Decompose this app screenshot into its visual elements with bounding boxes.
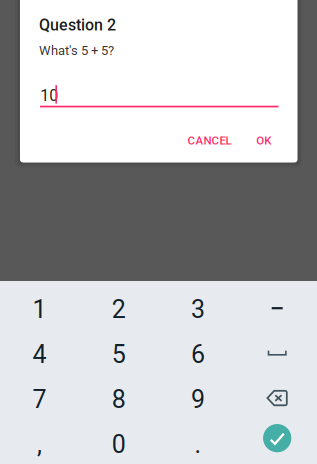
staticText: 3 <box>191 295 205 324</box>
button[interactable]: 2 <box>79 287 158 332</box>
button[interactable]: Done <box>238 416 317 461</box>
button[interactable]: , <box>0 422 79 464</box>
staticText: 5 <box>112 340 126 369</box>
staticText: 8 <box>112 385 126 414</box>
staticText: CANCEL <box>187 134 231 147</box>
button[interactable]: 8 <box>79 377 158 422</box>
button[interactable]: Minus <box>238 286 317 331</box>
button[interactable]: 5 <box>79 332 158 377</box>
staticText: What's 5 + 5? <box>39 43 114 58</box>
staticText: Question 2 <box>39 16 116 34</box>
staticText: 2 <box>112 295 126 324</box>
button[interactable]: 1 <box>0 287 79 332</box>
button[interactable]: Backspace <box>238 376 317 421</box>
staticText: OK <box>256 134 271 147</box>
button[interactable]: 3 <box>158 287 238 332</box>
staticText: 0 <box>112 430 126 459</box>
staticText: , <box>37 430 42 459</box>
staticText: 6 <box>191 340 205 369</box>
button[interactable]: . <box>158 422 238 464</box>
button[interactable]: CANCEL <box>180 125 238 155</box>
button[interactable]: 4 <box>0 332 79 377</box>
staticText: 9 <box>191 385 205 414</box>
button[interactable]: 9 <box>158 377 238 422</box>
staticText: 10 <box>40 86 58 105</box>
button[interactable]: 6 <box>158 332 238 377</box>
button[interactable]: Answer <box>40 83 278 108</box>
button[interactable]: Space <box>238 330 317 375</box>
button[interactable]: OK <box>249 125 279 155</box>
staticText: 1 <box>33 295 47 324</box>
button[interactable]: 0 <box>79 422 158 464</box>
staticText: 4 <box>33 340 47 369</box>
staticText: 7 <box>33 385 47 414</box>
staticText: . <box>194 430 201 459</box>
button[interactable]: 7 <box>0 377 79 422</box>
